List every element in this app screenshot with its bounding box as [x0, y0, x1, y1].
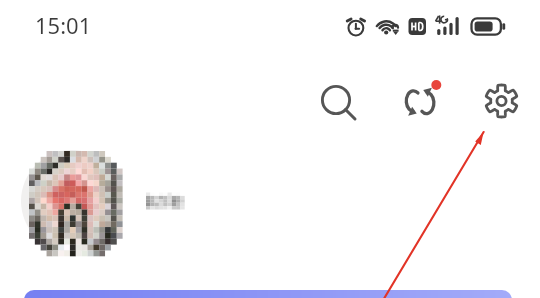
button[interactable]: Profile — [18, 146, 130, 258]
button[interactable]: Settings — [480, 80, 523, 123]
button[interactable]: Search — [314, 78, 360, 124]
staticText: 15:01 — [35, 10, 92, 40]
button[interactable]: Refresh — [400, 74, 446, 120]
button[interactable] — [24, 290, 512, 298]
